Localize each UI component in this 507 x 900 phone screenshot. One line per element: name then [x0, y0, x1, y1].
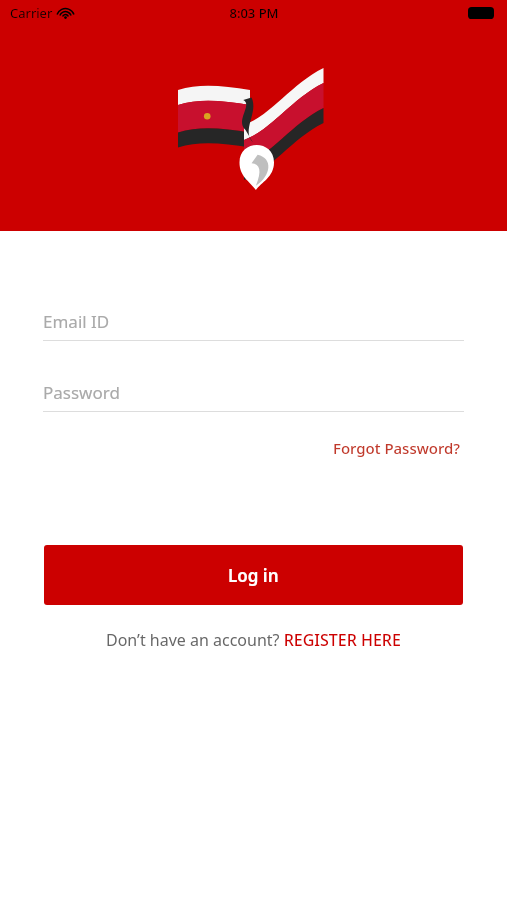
staticText: Carrier — [10, 4, 53, 22]
staticText: Log in — [228, 564, 279, 587]
staticText: Password — [43, 381, 120, 404]
staticText: Don’t have an account? REGISTER HERE — [106, 629, 401, 651]
staticText: Forgot Password? — [333, 438, 461, 458]
button[interactable]: Don’t have an account? REGISTER HERE — [100, 625, 407, 655]
staticText: Email ID — [43, 310, 110, 333]
button[interactable]: Log in — [44, 545, 463, 605]
button[interactable]: Password — [43, 377, 464, 407]
staticText: 8:03 PM — [229, 4, 279, 22]
button[interactable]: Email ID — [43, 306, 464, 336]
button[interactable]: Forgot Password? — [331, 435, 463, 461]
